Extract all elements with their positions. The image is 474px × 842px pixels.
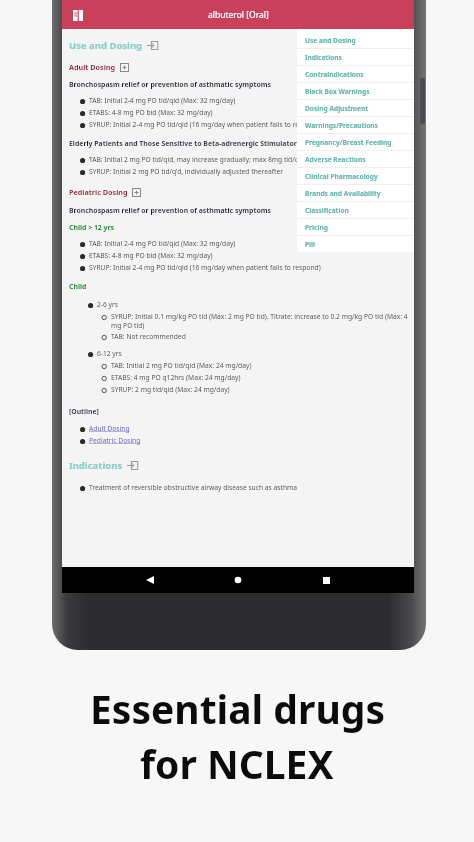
staticText: TAB: Initial 2-4 mg PO tid/qid (Max: 32 … [89,96,236,105]
button[interactable]: Pregnancy/Breast Feeding [297,134,414,151]
button[interactable]: Recent apps [282,567,370,593]
staticText: Dosing Adjustment [305,104,369,113]
button[interactable]: Classification [297,202,414,219]
button[interactable]: Indications [297,49,414,66]
button[interactable]: Open book [70,7,86,23]
button[interactable]: Indications [69,457,408,474]
staticText: Indications [69,459,123,472]
staticText: TAB: Initial 2 mg PO tid/qid, may increa… [89,155,305,164]
staticText: Treatment of reversible obstructive airw… [89,483,298,492]
staticText: ETABS: 4-8 mg PO bid (Max: 32 mg/day) [89,251,213,260]
staticText: Contraindications [305,70,364,79]
staticText: Use and Dosing [305,36,356,45]
staticText: [Outline] [69,407,99,416]
staticText: Classification [305,206,349,215]
button[interactable]: Brands and Availability [297,185,414,202]
staticText: Pediatric Dosing [89,436,141,445]
staticText: Use and Dosing [69,39,143,52]
button[interactable]: Back [106,567,194,593]
staticText: SYRUP: 2 mg tid/qid (Max: 24 mg/day) [111,385,230,394]
staticText: Pediatric Dosing [69,187,128,197]
staticText: Pill [305,240,315,249]
staticText: TAB: Not recommended [111,332,186,341]
button[interactable]: Contraindications [297,66,414,83]
staticText: SYRUP: Initial 2-4 mg PO tid/qid (16 mg/… [89,263,321,272]
button[interactable]: Pediatric Dosing [69,186,408,198]
staticText: Essential drugs [90,682,385,735]
staticText: Adult Dosing [69,62,116,72]
staticText: Bronchospasm relief or prevention of ast… [69,80,271,89]
button[interactable]: Adult Dosing [89,424,130,433]
staticText: TAB: Initial 2-4 mg PO tid/qid (Max: 32 … [89,239,236,248]
staticText: Brands and Availability [305,189,381,198]
button[interactable]: Use and Dosing [69,37,408,54]
staticText: SYRUP: Initial 0.1 mg/kg PO tid (Max: 2 … [111,312,408,330]
staticText: ETABS: 4 mg PO q12hrs (Max: 24 mg/day) [111,373,241,382]
staticText: Elderly Patients and Those Sensitive to … [69,139,301,148]
staticText: SYRUP: Initial 2 mg PO tid/q'd, individu… [89,167,283,176]
staticText: Bronchospasm relief or prevention of ast… [69,206,271,215]
staticText: Child [69,282,87,291]
button[interactable]: Warnings/Precautions [297,117,414,134]
staticText: ETABS: 4-8 mg PO bid (Max: 32 mg/day) [89,108,213,117]
staticText: Warnings/Precautions [305,121,378,130]
staticText: Black Box Warnings [305,87,370,96]
staticText: Pregnancy/Breast Feeding [305,138,392,147]
button[interactable]: Use and Dosing [297,32,414,49]
staticText: albuterol [Oral] [208,9,269,21]
button[interactable]: Pediatric Dosing [89,436,141,445]
staticText: TAB: Initial 2 mg PO tid/qid (Max: 24 mg… [111,361,252,370]
staticText: Child > 12 yrs [69,223,115,232]
staticText: 2-6 yrs [97,300,118,309]
staticText: 6-12 yrs [97,349,122,358]
staticText: Adult Dosing [89,424,130,433]
staticText: Pricing [305,223,328,232]
staticText: Indications [305,53,342,62]
staticText: Clinical Pharmacology [305,172,378,181]
button[interactable]: Home [194,567,282,593]
button[interactable]: Adult Dosing [69,61,408,73]
button[interactable]: Clinical Pharmacology [297,168,414,185]
button[interactable]: Black Box Warnings [297,83,414,100]
staticText: for NCLEX [140,737,334,790]
staticText: Adverse Reactions [305,155,366,164]
button[interactable]: Adverse Reactions [297,151,414,168]
staticText: SYRUP: Initial 2-4 mg PO tid/qid (16 mg/… [89,120,321,129]
button[interactable]: Pill [297,236,414,252]
button[interactable]: Dosing Adjustment [297,100,414,117]
button[interactable]: Pricing [297,219,414,236]
